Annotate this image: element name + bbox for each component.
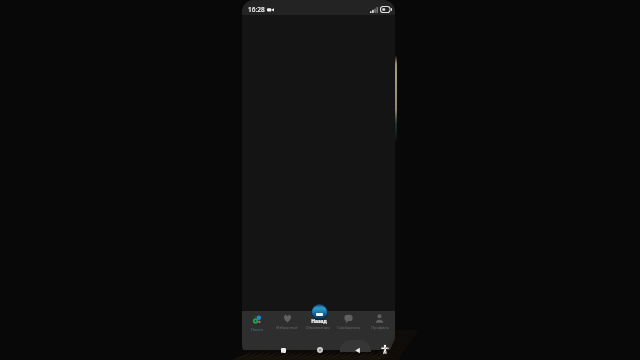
- button[interactable]: Объявления: [302, 311, 333, 338]
- staticText: Профиль: [371, 325, 389, 330]
- staticText: Сообщения: [337, 325, 360, 330]
- staticText: Поиск: [251, 327, 263, 332]
- button[interactable]: Back: [351, 344, 363, 355]
- staticText: Назад: [311, 318, 327, 325]
- button[interactable]: Accessibility: [379, 343, 391, 355]
- button[interactable]: Избранное: [272, 311, 302, 338]
- button[interactable]: Recent apps: [277, 344, 289, 355]
- staticText: Объявления: [305, 325, 330, 330]
- staticText: Избранное: [276, 325, 298, 330]
- button[interactable]: Профиль: [364, 311, 395, 338]
- button[interactable]: Home: [314, 344, 326, 355]
- button[interactable]: Сообщения: [333, 311, 364, 338]
- staticText: 16:28: [248, 5, 265, 14]
- button[interactable]: Поиск: [242, 311, 272, 338]
